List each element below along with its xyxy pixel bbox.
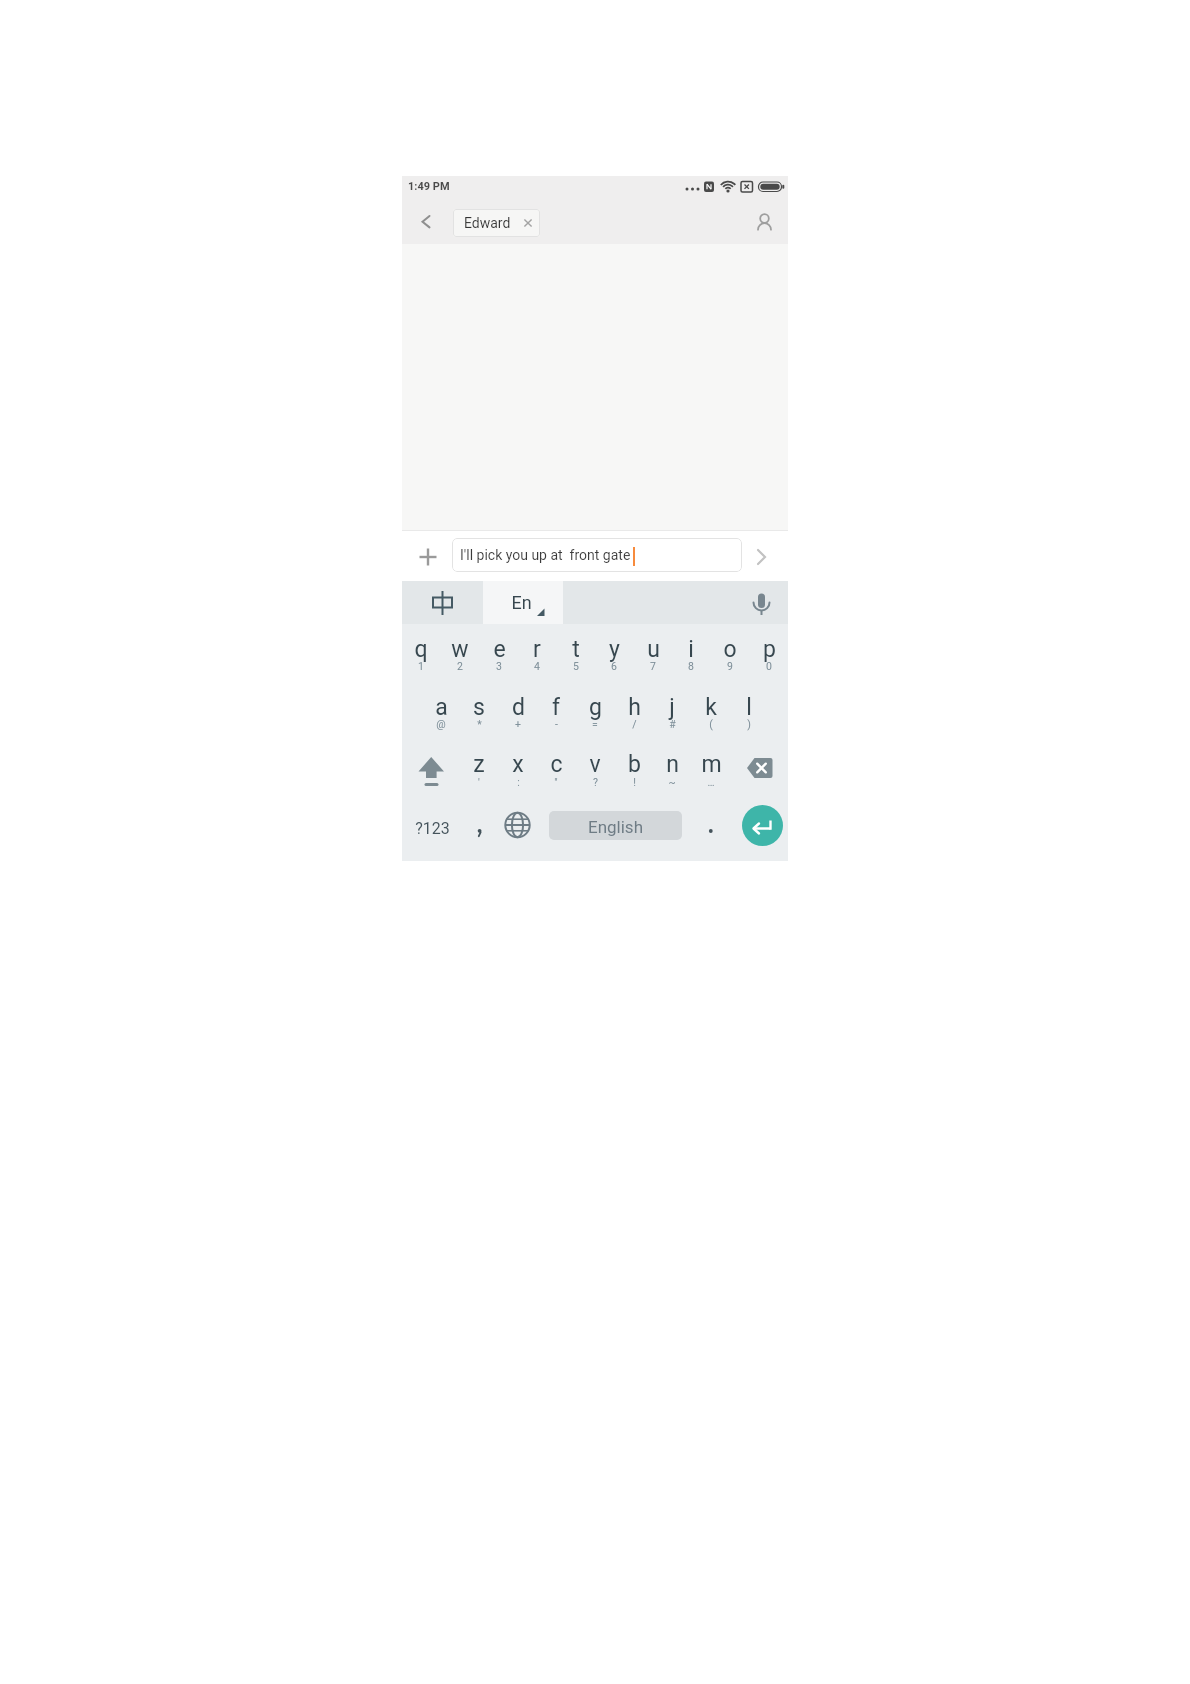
staticText: u: [647, 636, 660, 663]
staticText: e: [493, 636, 506, 663]
staticText: f: [552, 694, 560, 721]
staticText: w: [451, 636, 469, 663]
button[interactable]: [595, 628, 634, 682]
button[interactable]: [750, 208, 779, 237]
button[interactable]: [402, 628, 441, 682]
staticText: ": [554, 776, 558, 788]
button[interactable]: [460, 686, 499, 740]
button[interactable]: [537, 743, 576, 797]
button[interactable]: [414, 543, 442, 571]
button[interactable]: [634, 628, 673, 682]
staticText: o: [723, 636, 737, 663]
staticText: En: [511, 592, 532, 613]
staticText: ~: [668, 776, 676, 788]
staticText: #: [669, 718, 676, 730]
button[interactable]: [614, 686, 653, 740]
button[interactable]: [576, 743, 615, 797]
staticText: g: [589, 694, 602, 721]
button[interactable]: [747, 543, 775, 571]
staticText: d: [512, 694, 525, 721]
button[interactable]: [441, 628, 480, 682]
staticText: English: [588, 817, 644, 837]
button[interactable]: [730, 686, 769, 740]
button[interactable]: [518, 628, 557, 682]
staticText: -: [555, 718, 558, 730]
button[interactable]: [556, 628, 595, 682]
staticText: @: [436, 718, 446, 730]
staticText: h: [628, 694, 641, 721]
button[interactable]: [742, 805, 783, 846]
button[interactable]: [499, 686, 538, 740]
button[interactable]: [653, 743, 692, 797]
staticText: ': [478, 776, 480, 788]
staticText: !: [633, 776, 636, 788]
staticText: k: [705, 694, 717, 721]
button[interactable]: [749, 628, 788, 682]
staticText: 3: [496, 660, 502, 672]
button[interactable]: [460, 743, 499, 797]
staticText: 1: [418, 660, 424, 672]
button[interactable]: [460, 806, 500, 848]
staticText: t: [572, 636, 580, 663]
button[interactable]: [614, 743, 653, 797]
staticText: 0: [766, 660, 772, 672]
button[interactable]: [691, 806, 731, 848]
staticText: …: [707, 776, 715, 788]
button[interactable]: [499, 743, 538, 797]
button[interactable]: I'll pick you up at front gate: [452, 538, 742, 572]
staticText: m: [701, 751, 722, 778]
staticText: 4: [534, 660, 540, 672]
staticText: I'll pick you up at front gate: [460, 547, 631, 563]
staticText: r: [533, 636, 541, 663]
staticText: ?123: [415, 819, 450, 838]
staticText: j: [669, 694, 675, 721]
staticText: p: [763, 636, 776, 663]
button[interactable]: [653, 686, 692, 740]
staticText: l: [746, 694, 752, 721]
button[interactable]: [402, 581, 483, 624]
staticText: 7: [650, 660, 656, 672]
button[interactable]: [742, 748, 782, 788]
staticText: b: [628, 751, 641, 778]
button[interactable]: [412, 743, 452, 793]
button[interactable]: English: [549, 811, 682, 840]
button[interactable]: [421, 686, 460, 740]
button[interactable]: [479, 628, 518, 682]
button[interactable]: [576, 686, 615, 740]
button[interactable]: [692, 686, 731, 740]
staticText: a: [435, 694, 448, 721]
staticText: x: [512, 751, 524, 778]
button[interactable]: [537, 686, 576, 740]
button[interactable]: [499, 806, 539, 848]
staticText: n: [666, 751, 679, 778]
button[interactable]: [692, 743, 731, 797]
staticText: :: [517, 776, 520, 788]
staticText: 8: [688, 660, 694, 672]
staticText: v: [589, 751, 601, 778]
staticText: 6: [611, 660, 617, 672]
button[interactable]: Edward: [453, 209, 540, 237]
staticText: +: [515, 718, 521, 730]
staticText: 9: [727, 660, 733, 672]
staticText: *: [477, 718, 482, 730]
staticText: c: [550, 751, 563, 778]
staticText: z: [473, 751, 485, 778]
staticText: ?: [593, 776, 598, 788]
button[interactable]: [410, 806, 454, 848]
staticText: (: [709, 718, 713, 730]
staticText: i: [688, 636, 694, 663]
staticText: 5: [573, 660, 579, 672]
staticText: =: [592, 718, 598, 730]
staticText: Edward: [464, 215, 511, 231]
staticText: q: [414, 636, 428, 663]
staticText: y: [609, 636, 620, 663]
button[interactable]: [672, 628, 711, 682]
button[interactable]: [412, 208, 440, 236]
staticText: 1:49 PM: [408, 180, 450, 193]
staticText: ): [747, 718, 751, 730]
button[interactable]: [747, 588, 776, 618]
staticText: /: [632, 718, 637, 730]
staticText: s: [473, 694, 485, 721]
button[interactable]: [483, 581, 563, 624]
button[interactable]: [711, 628, 750, 682]
